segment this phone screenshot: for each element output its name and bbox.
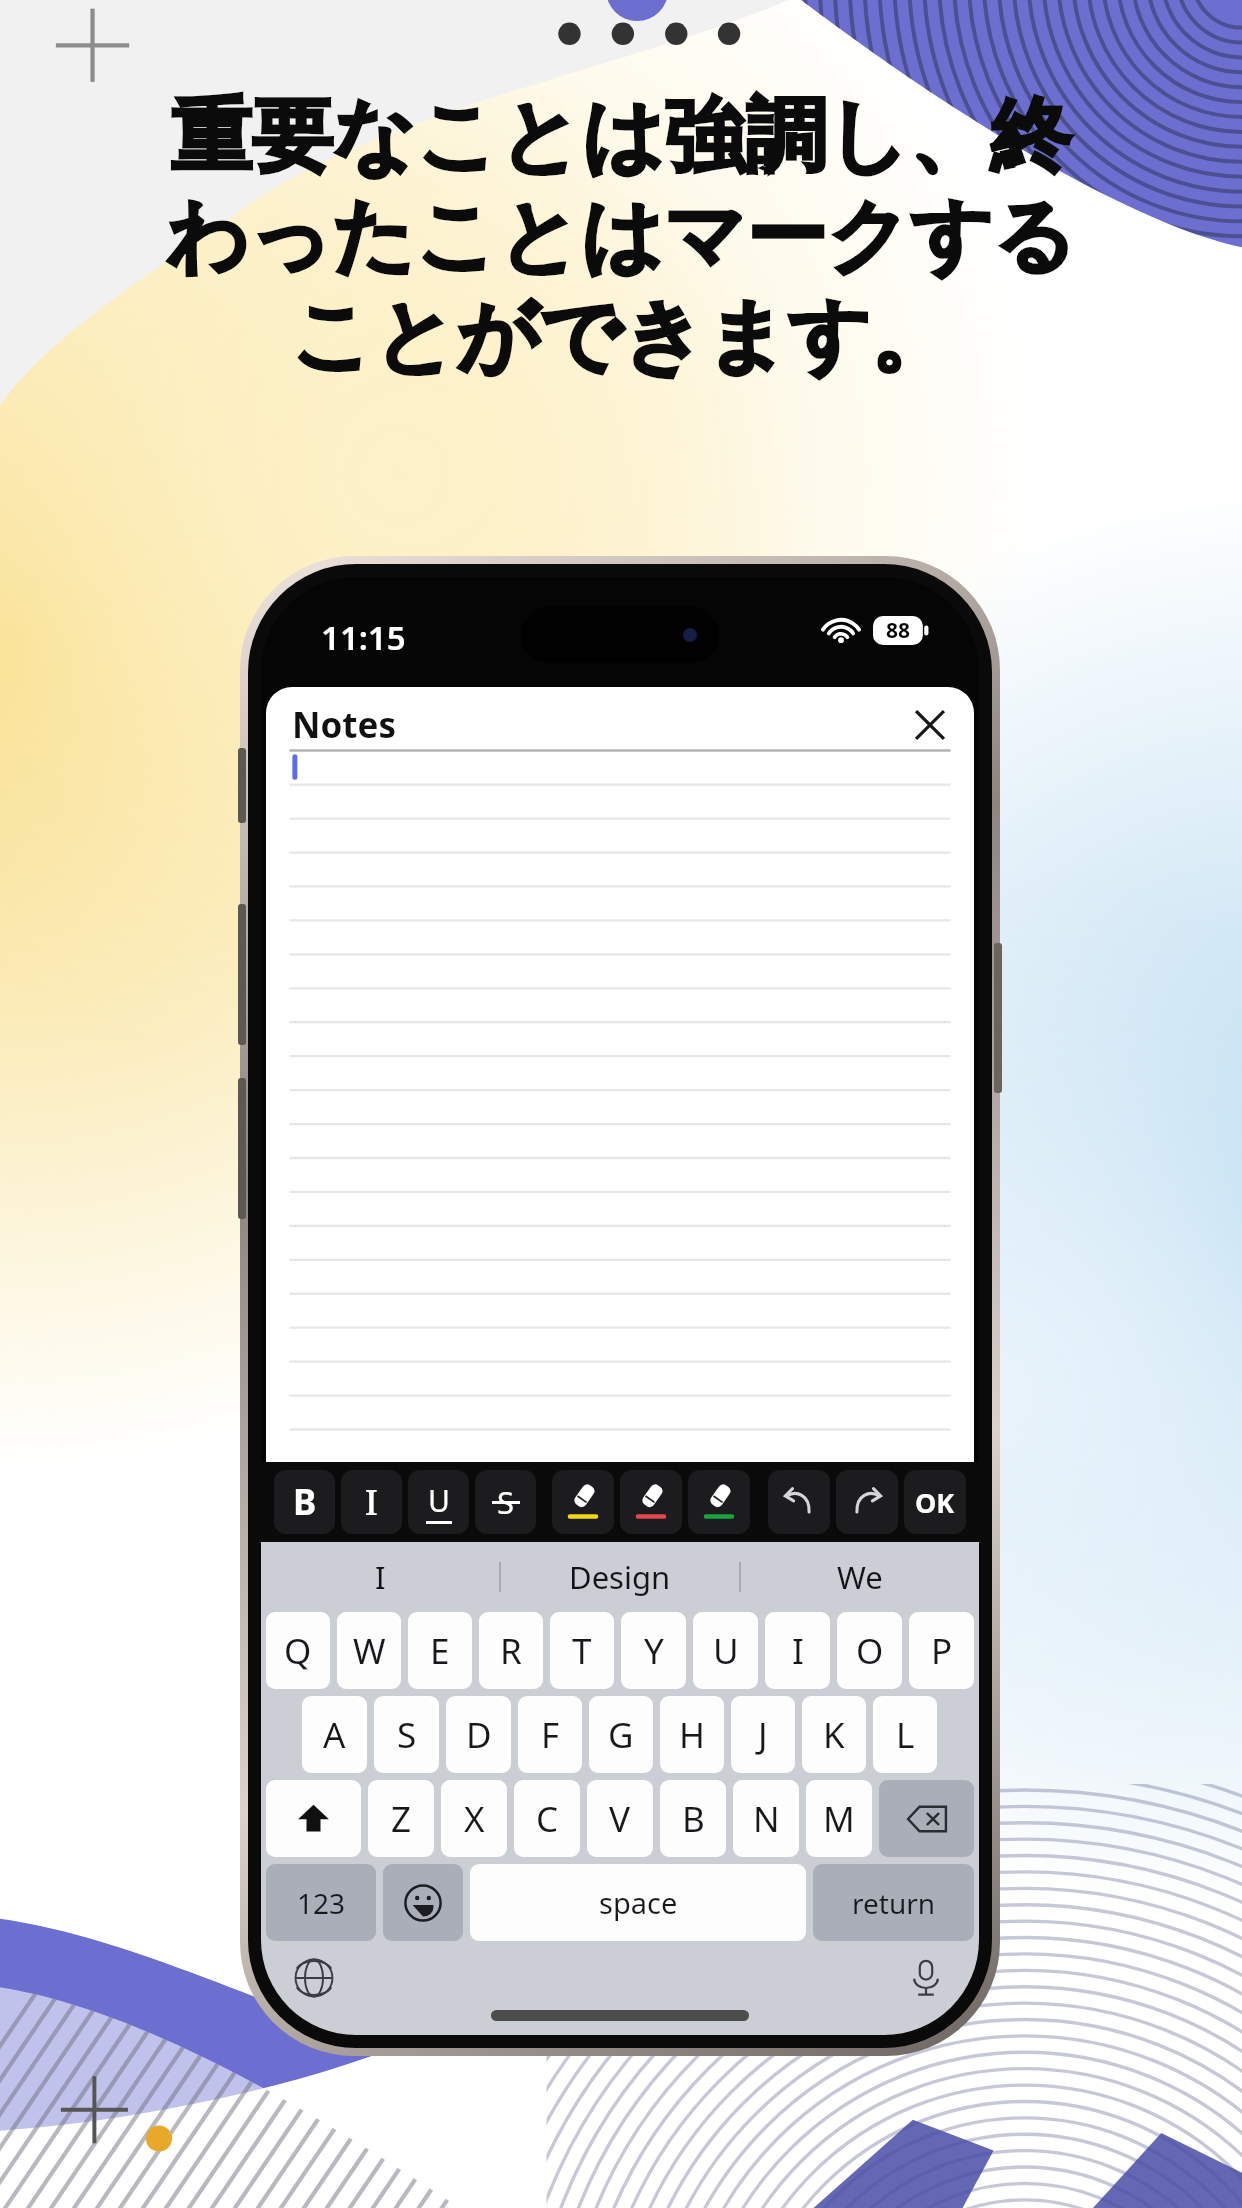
button[interactable]: Emoji <box>383 1864 463 1941</box>
button[interactable]: Undo <box>768 1470 830 1534</box>
button[interactable]: Backspace <box>879 1780 974 1857</box>
button[interactable]: 123 <box>266 1864 376 1941</box>
button[interactable]: N <box>733 1780 799 1857</box>
button[interactable]: Highlight yellow <box>552 1470 614 1534</box>
staticText: B <box>293 1478 317 1526</box>
staticText: M <box>823 1795 855 1843</box>
button[interactable]: E <box>408 1612 472 1689</box>
button[interactable]: Redo <box>836 1470 898 1534</box>
button[interactable]: U <box>693 1612 758 1689</box>
staticText: I <box>375 1556 386 1598</box>
staticText: V <box>609 1795 631 1843</box>
button[interactable]: S <box>374 1696 439 1773</box>
staticText: J <box>758 1711 768 1759</box>
button[interactable]: J <box>731 1696 795 1773</box>
button[interactable]: Design <box>501 1542 739 1612</box>
button[interactable]: X <box>441 1780 507 1857</box>
button[interactable]: C <box>514 1780 580 1857</box>
button[interactable]: Underline <box>408 1470 469 1534</box>
button[interactable]: B <box>660 1780 726 1857</box>
button[interactable]: Highlight green <box>688 1470 750 1534</box>
staticText: U <box>713 1627 739 1675</box>
staticText: E <box>430 1627 450 1675</box>
button[interactable]: W <box>337 1612 401 1689</box>
staticText: W <box>353 1627 386 1675</box>
button[interactable]: Highlight red <box>620 1470 682 1534</box>
staticText: We <box>837 1556 883 1598</box>
staticText: Notes <box>292 701 396 749</box>
staticText: S <box>397 1711 417 1759</box>
button[interactable]: Italic <box>341 1470 402 1534</box>
staticText: space <box>599 1883 678 1922</box>
staticText: Z <box>391 1795 412 1843</box>
button[interactable]: V <box>587 1780 653 1857</box>
staticText: Y <box>644 1627 664 1675</box>
staticText: return <box>852 1884 936 1922</box>
button[interactable]: L <box>873 1696 937 1773</box>
button[interactable]: Switch language <box>287 1951 341 2005</box>
staticText: O <box>856 1627 884 1675</box>
staticText: C <box>536 1795 559 1843</box>
staticText: K <box>823 1711 845 1759</box>
button[interactable]: Strikethrough <box>475 1470 536 1534</box>
button[interactable]: R <box>479 1612 543 1689</box>
button[interactable]: Z <box>368 1780 434 1857</box>
button[interactable]: Bold <box>274 1470 335 1534</box>
staticText: R <box>500 1627 522 1675</box>
button[interactable]: D <box>446 1696 511 1773</box>
button[interactable]: T <box>550 1612 614 1689</box>
button[interactable]: We <box>741 1542 979 1612</box>
button[interactable]: P <box>909 1612 974 1689</box>
button[interactable]: A <box>302 1696 367 1773</box>
staticText: Q <box>284 1627 312 1675</box>
staticText: N <box>753 1795 780 1843</box>
staticText: F <box>541 1711 560 1759</box>
button[interactable]: Shift <box>266 1780 361 1857</box>
staticText: P <box>931 1627 953 1675</box>
button[interactable]: M <box>806 1780 872 1857</box>
button[interactable]: F <box>518 1696 582 1773</box>
button[interactable]: Q <box>266 1612 330 1689</box>
staticText: I <box>365 1479 378 1525</box>
button[interactable]: return <box>813 1864 974 1941</box>
staticText: 重要なことは強調し、終 わったことはマークする ことができます。 <box>166 86 1076 388</box>
button[interactable]: Y <box>621 1612 686 1689</box>
staticText: 11:15 <box>321 615 406 660</box>
staticText: G <box>608 1711 634 1759</box>
staticText: H <box>679 1711 705 1759</box>
button[interactable]: I <box>765 1612 830 1689</box>
staticText: Design <box>569 1556 671 1598</box>
staticText: X <box>464 1795 485 1843</box>
button[interactable]: G <box>589 1696 653 1773</box>
staticText: I <box>792 1627 804 1675</box>
staticText: 88 <box>886 616 911 645</box>
button[interactable]: H <box>660 1696 724 1773</box>
staticText: 123 <box>297 1884 346 1922</box>
staticText: A <box>323 1711 346 1759</box>
button[interactable]: I <box>261 1542 499 1612</box>
staticText: L <box>896 1711 915 1759</box>
button[interactable]: Dictation <box>899 1951 953 2005</box>
staticText: T <box>572 1627 592 1675</box>
button[interactable]: Close <box>906 701 954 749</box>
staticText: S <box>497 1481 515 1523</box>
staticText: D <box>466 1711 492 1759</box>
staticText: OK <box>915 1484 955 1521</box>
staticText: U <box>428 1480 450 1521</box>
button[interactable]: OK <box>904 1470 966 1534</box>
staticText: B <box>682 1795 705 1843</box>
button[interactable]: O <box>837 1612 902 1689</box>
button[interactable]: K <box>802 1696 866 1773</box>
button[interactable]: space <box>470 1864 806 1941</box>
